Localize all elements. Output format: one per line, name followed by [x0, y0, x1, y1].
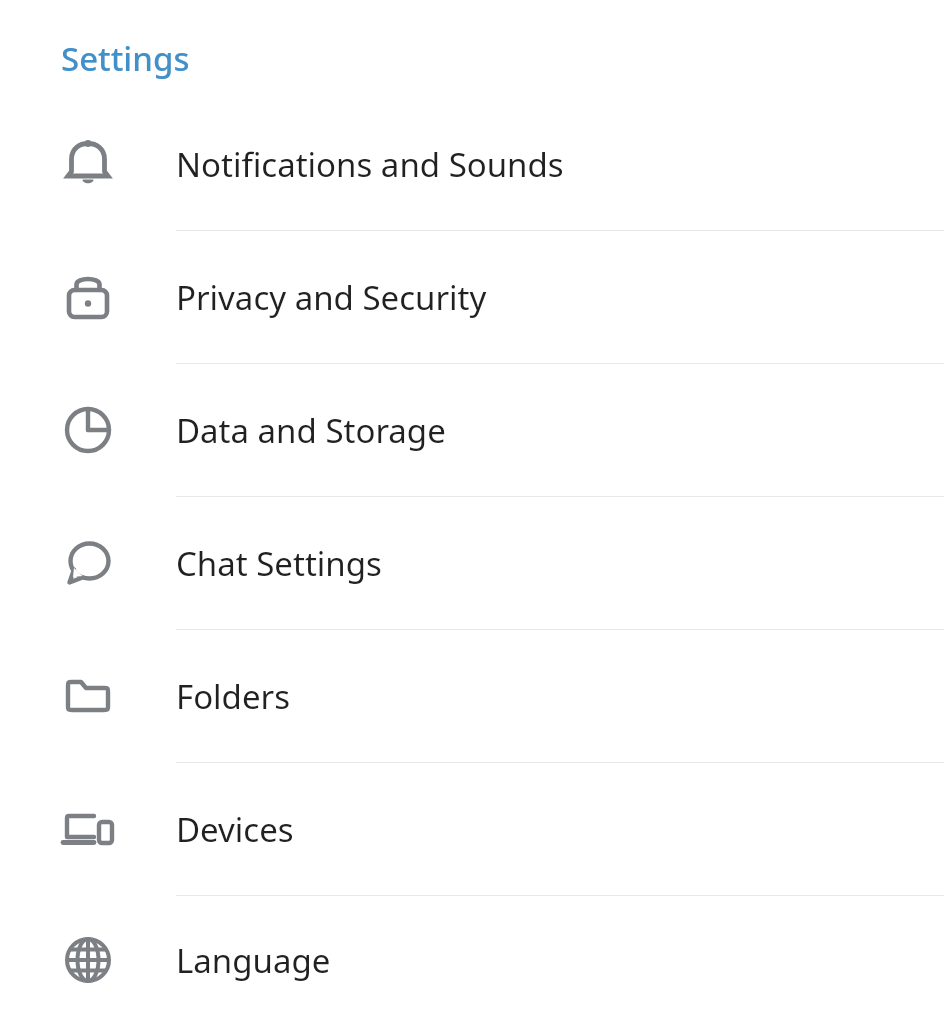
- staticText: Privacy and Security: [176, 275, 487, 320]
- button[interactable]: Notifications and Sounds: [0, 98, 944, 231]
- staticText: Chat Settings: [176, 541, 382, 586]
- button[interactable]: Folders: [0, 630, 944, 763]
- staticText: Folders: [176, 674, 290, 719]
- staticText: Language: [176, 938, 331, 983]
- button[interactable]: Data and Storage: [0, 364, 944, 497]
- button[interactable]: Language: [0, 896, 944, 1024]
- staticText: Settings: [61, 36, 190, 81]
- button[interactable]: Privacy and Security: [0, 231, 944, 364]
- button[interactable]: Chat Settings: [0, 497, 944, 630]
- staticText: Data and Storage: [176, 408, 446, 453]
- button[interactable]: Devices: [0, 763, 944, 896]
- staticText: Devices: [176, 807, 294, 852]
- staticText: Notifications and Sounds: [176, 142, 564, 187]
